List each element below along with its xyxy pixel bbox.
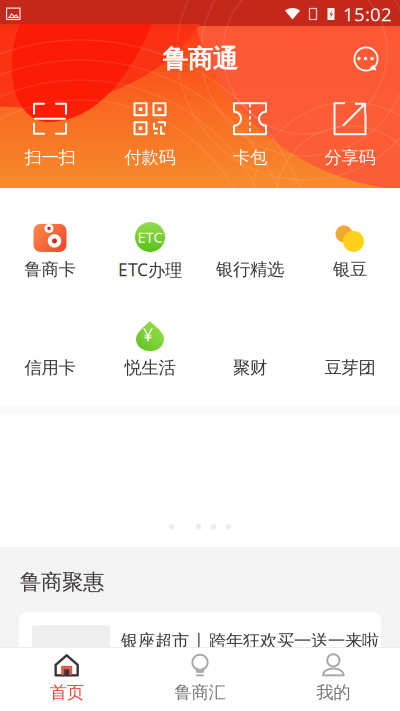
button[interactable]: 鲁商汇 <box>133 653 267 703</box>
staticText: 扫一扫 <box>24 147 75 168</box>
button[interactable]: 鲁商卡 <box>0 222 100 280</box>
staticText: ETC办理 <box>118 258 182 281</box>
staticText: 信用卡 <box>24 357 75 378</box>
staticText: 15:02 <box>343 2 392 26</box>
button[interactable]: 分享码 <box>300 103 400 168</box>
button[interactable]: 扫一扫 <box>0 103 100 168</box>
staticText: 银座超市 | 跨年狂欢买一送一来啦 <box>121 629 379 652</box>
staticText: 卡包 <box>233 147 267 168</box>
staticText: 鲁商卡 <box>24 259 75 280</box>
button[interactable]: 首页 <box>0 653 133 703</box>
button[interactable]: 银豆 <box>300 222 400 280</box>
button[interactable]: 银座超市 | 跨年狂欢买一送一来啦 <box>19 612 381 668</box>
button[interactable]: 信用卡 <box>0 320 100 378</box>
staticText: 首页 <box>50 682 84 703</box>
staticText: 聚财 <box>233 357 267 378</box>
staticText: ¥ <box>143 323 153 346</box>
button[interactable]: 银行精选 <box>200 222 300 280</box>
button[interactable]: ¥ <box>100 320 200 378</box>
staticText: 银豆 <box>333 259 367 280</box>
button[interactable]: 豆芽团 <box>300 320 400 378</box>
button[interactable]: 我的 <box>267 653 400 703</box>
staticText: 我的 <box>316 682 350 703</box>
staticText: 银行精选 <box>216 259 284 280</box>
staticText: 鲁商汇 <box>174 682 225 703</box>
button[interactable]: 聚财 <box>200 320 300 378</box>
button[interactable]: 客服消息 <box>353 46 379 72</box>
button[interactable]: 卡包 <box>200 103 300 168</box>
staticText: 分享码 <box>324 147 375 168</box>
button[interactable]: ETC <box>100 221 200 281</box>
staticText: 豆芽团 <box>324 357 375 378</box>
staticText: 鲁商通 <box>162 43 237 74</box>
button[interactable]: 付款码 <box>100 103 200 168</box>
staticText: 鲁商聚惠 <box>20 569 104 595</box>
staticText: 悦生活 <box>124 357 175 378</box>
staticText: 付款码 <box>124 147 175 168</box>
staticText: ETC <box>137 227 162 247</box>
